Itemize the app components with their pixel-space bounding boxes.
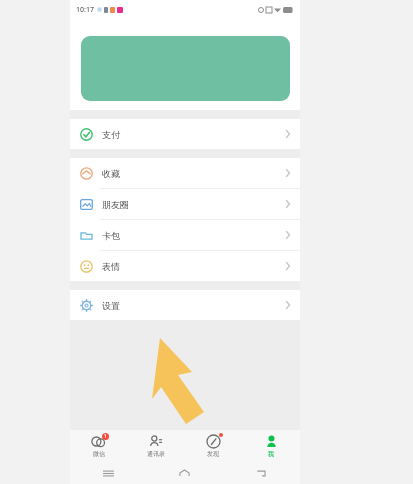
staticText: 设置 — [102, 300, 120, 311]
button[interactable]: 表情 — [70, 251, 300, 281]
staticText: 微信 — [93, 450, 105, 458]
button[interactable]: 支付 — [70, 119, 300, 149]
staticText: 支付 — [102, 129, 120, 140]
button[interactable]: 朋友圈 — [70, 189, 300, 219]
staticText: 收藏 — [102, 168, 120, 179]
button[interactable]: 我 — [242, 430, 300, 462]
staticText: 卡包 — [102, 230, 120, 241]
button[interactable] — [81, 36, 290, 101]
button[interactable]: 收藏 — [70, 158, 300, 188]
staticText: 10:17 — [76, 5, 94, 15]
staticText: 1 — [104, 433, 107, 440]
button[interactable]: 发现 — [184, 430, 242, 462]
staticText: 发现 — [207, 450, 219, 458]
staticText: 表情 — [102, 261, 120, 272]
button[interactable]: Back — [223, 462, 300, 484]
button[interactable]: 卡包 — [70, 220, 300, 250]
button[interactable]: Recent apps — [70, 462, 146, 484]
staticText: 朋友圈 — [102, 199, 129, 210]
staticText: 通讯录 — [147, 450, 165, 458]
button[interactable]: Home — [146, 462, 223, 484]
button[interactable]: 设置 — [70, 290, 300, 320]
button[interactable]: 通讯录 — [127, 430, 184, 462]
button[interactable]: 1 — [70, 430, 127, 462]
staticText: 我 — [268, 450, 274, 458]
